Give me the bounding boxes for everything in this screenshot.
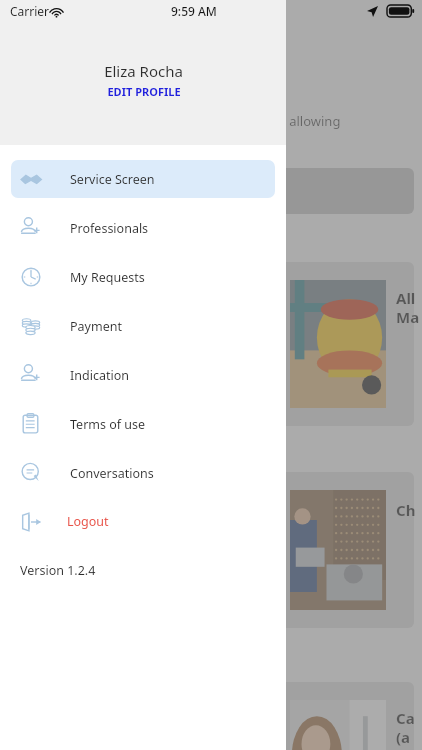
staticText: Our app connects professionals and clien… xyxy=(20,112,341,130)
staticText: My Requests xyxy=(70,269,145,286)
staticText: Ca (a xyxy=(396,708,415,747)
staticText: Logout xyxy=(67,513,109,530)
button[interactable]: Terms of use xyxy=(11,405,275,443)
button[interactable]: EDIT PROFILE xyxy=(107,84,181,99)
staticText: Terms of use xyxy=(70,416,146,433)
staticText: Eliza Rocha xyxy=(104,61,183,81)
staticText: Service Screen xyxy=(70,171,155,188)
button[interactable]: Professionals xyxy=(11,209,275,247)
staticText: EDIT PROFILE xyxy=(107,84,181,99)
staticText: Carrier xyxy=(10,3,50,19)
button[interactable]: Logout xyxy=(0,503,286,540)
button[interactable]: Indication xyxy=(11,356,275,394)
button[interactable]: Payment xyxy=(11,307,275,345)
staticText: All Ma xyxy=(396,288,420,327)
staticText: Conversations xyxy=(70,465,154,482)
button[interactable]: My Requests xyxy=(11,258,275,296)
staticText: Ch xyxy=(396,500,416,520)
button[interactable]: Service Screen xyxy=(11,160,275,198)
staticText: 9:59 AM xyxy=(171,3,217,19)
staticText: Indication xyxy=(70,367,129,384)
staticText: Version 1.2.4 xyxy=(20,562,96,579)
button[interactable]: Conversations xyxy=(11,454,275,492)
staticText: Payment xyxy=(70,318,122,335)
staticText: Professionals xyxy=(70,220,149,237)
